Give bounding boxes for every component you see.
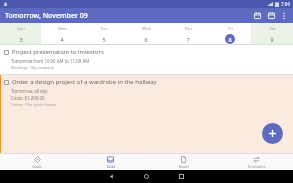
staticText: Goals xyxy=(32,164,42,169)
button[interactable]: Add event xyxy=(262,123,283,144)
button[interactable]: Agenda view xyxy=(266,10,277,21)
staticText: 5 xyxy=(102,36,106,43)
staticText: Wed xyxy=(142,26,151,32)
button[interactable]: Sun xyxy=(0,23,41,44)
staticText: Project presentation to investors xyxy=(12,48,104,56)
staticText: 6 xyxy=(144,36,148,43)
staticText: Tomorrow, November 09 xyxy=(5,11,88,21)
button[interactable]: Mark complete xyxy=(0,75,293,153)
staticText: Fri xyxy=(228,26,233,32)
staticText: 4 xyxy=(60,36,64,43)
staticText: 9 xyxy=(270,36,274,43)
staticText: House • The spirits house xyxy=(11,102,57,107)
button[interactable]: Mon xyxy=(41,23,83,44)
staticText: 8 xyxy=(228,36,232,43)
staticText: Order a design project of a wardrobe in … xyxy=(12,78,157,86)
staticText: Tasks xyxy=(106,164,116,169)
button[interactable]: Mark complete xyxy=(4,50,9,55)
button[interactable]: Tasks xyxy=(74,154,147,170)
staticText: Sat xyxy=(269,26,276,32)
button[interactable]: More options xyxy=(279,11,288,20)
staticText: Tue xyxy=(100,26,108,32)
button[interactable]: Mark complete xyxy=(0,45,293,74)
staticText: Costs: $1,290.00 xyxy=(11,95,45,101)
staticText: 3 xyxy=(19,36,23,43)
staticText: 7 xyxy=(186,36,190,43)
staticText: Sun xyxy=(17,26,25,32)
staticText: 7:04 xyxy=(281,1,290,7)
button[interactable]: Thu xyxy=(167,23,209,44)
staticText: Notes xyxy=(179,164,189,169)
button[interactable]: Back xyxy=(105,170,118,183)
button[interactable]: Calendar view xyxy=(252,10,263,21)
button[interactable]: Timetables xyxy=(220,154,293,170)
button[interactable]: Sat xyxy=(251,23,293,44)
staticText: Meetings • My company xyxy=(11,65,54,70)
staticText: Mon xyxy=(58,26,67,32)
button[interactable]: Fri xyxy=(209,23,251,44)
staticText: Thu xyxy=(184,26,192,32)
button[interactable]: Mark complete xyxy=(4,80,9,85)
button[interactable]: Home xyxy=(140,170,153,183)
button[interactable]: Recents xyxy=(175,170,188,183)
button[interactable]: Wed xyxy=(125,23,167,44)
button[interactable]: Goals xyxy=(0,154,74,170)
staticText: Tomorrow, all day xyxy=(11,88,48,94)
staticText: Tomorrow from 10:00 AM to 11:00 AM xyxy=(11,58,90,64)
staticText: Timetables xyxy=(247,164,266,169)
button[interactable]: Tue xyxy=(83,23,125,44)
button[interactable]: Notes xyxy=(147,154,220,170)
